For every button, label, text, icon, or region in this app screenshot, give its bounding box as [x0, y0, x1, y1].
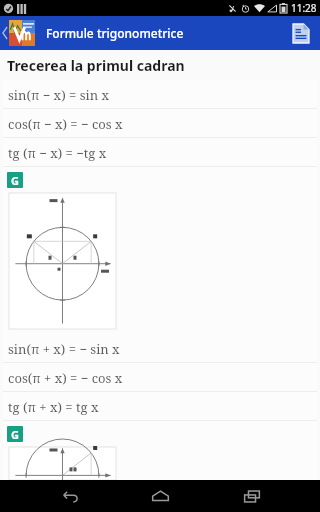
button[interactable]: Navigate up	[0, 16, 35, 50]
staticText: tg (π + x) = tg x	[8, 398, 99, 416]
button[interactable]: cos(π − x) = − cos x	[3, 109, 317, 138]
button[interactable]: sin(π + x) = − sin x	[3, 334, 317, 363]
staticText: G	[11, 173, 19, 188]
staticText: sin(π + x) = − sin x	[8, 340, 120, 358]
staticText: cos(π + x) = − cos x	[8, 369, 123, 387]
staticText: tg (π − x) = −tg x	[8, 144, 107, 162]
button[interactable]: Document	[282, 16, 320, 50]
button[interactable]: sin(π − x) = sin x	[3, 80, 317, 109]
button[interactable]: tg (π + x) = tg x	[3, 392, 317, 421]
staticText: sin(π − x) = sin x	[8, 86, 109, 104]
staticText: 11:28	[291, 1, 317, 15]
button[interactable]: G	[3, 421, 317, 480]
staticText: G	[11, 427, 19, 442]
button[interactable]: Home	[137, 480, 183, 512]
button[interactable]: G	[3, 167, 317, 334]
staticText: Formule trigonometrice	[46, 25, 184, 41]
button[interactable]: Back	[46, 480, 92, 512]
staticText: Trecerea la primul cadran	[7, 56, 185, 75]
button[interactable]: tg (π − x) = −tg x	[3, 138, 317, 167]
button[interactable]: Recent apps	[229, 480, 275, 512]
button[interactable]: cos(π + x) = − cos x	[3, 363, 317, 392]
staticText: cos(π − x) = − cos x	[8, 115, 123, 133]
